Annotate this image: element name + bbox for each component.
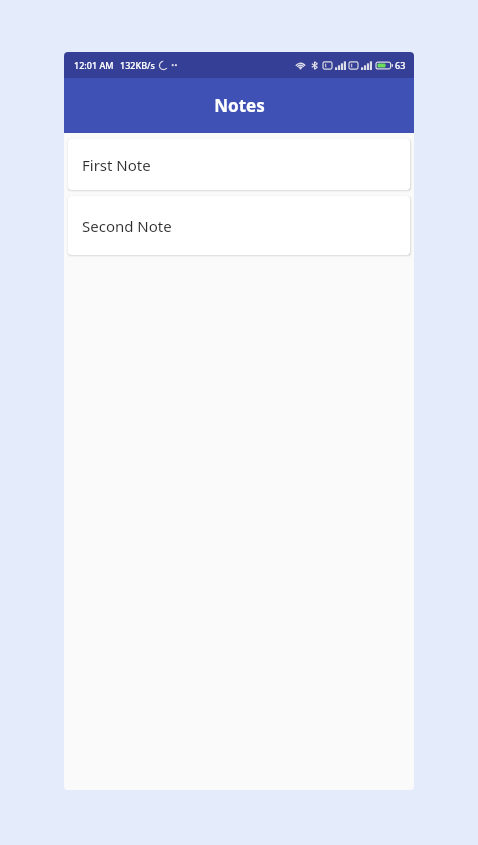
- staticText: Notes: [214, 94, 265, 117]
- staticText: First Note: [82, 155, 151, 175]
- staticText: 63: [395, 59, 406, 71]
- staticText: Second Note: [82, 216, 172, 236]
- staticText: 132KB/s: [120, 59, 155, 71]
- button[interactable]: Second Note: [68, 196, 410, 255]
- staticText: 12:01 AM: [74, 59, 114, 71]
- button[interactable]: First Note: [68, 139, 410, 190]
